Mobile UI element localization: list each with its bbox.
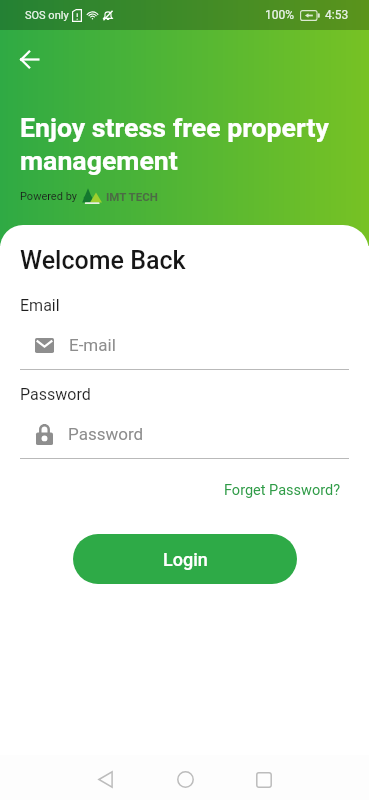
button[interactable]: Back: [12, 42, 46, 76]
staticText: IMT TECH: [106, 190, 158, 203]
staticText: Password: [68, 424, 144, 444]
button[interactable]: Password: [0, 418, 369, 450]
staticText: Powered by: [20, 190, 77, 203]
button[interactable]: Forget Password?: [204, 476, 369, 505]
button[interactable]: Back: [85, 759, 126, 800]
staticText: Enjoy stress free property management: [20, 112, 329, 176]
button[interactable]: Home: [165, 759, 206, 800]
staticText: E-mail: [69, 335, 116, 355]
staticText: Email: [20, 296, 60, 315]
staticText: SOS only: [25, 9, 69, 22]
button[interactable]: E-mail: [0, 329, 369, 361]
staticText: Forget Password?: [224, 482, 340, 499]
staticText: Login: [163, 549, 208, 570]
staticText: Welcome Back: [20, 246, 186, 275]
button[interactable]: Login: [73, 534, 297, 584]
staticText: 4:53: [325, 8, 349, 22]
staticText: Password: [20, 385, 91, 404]
staticText: 100%: [265, 8, 295, 22]
button[interactable]: Recent apps: [243, 759, 284, 800]
